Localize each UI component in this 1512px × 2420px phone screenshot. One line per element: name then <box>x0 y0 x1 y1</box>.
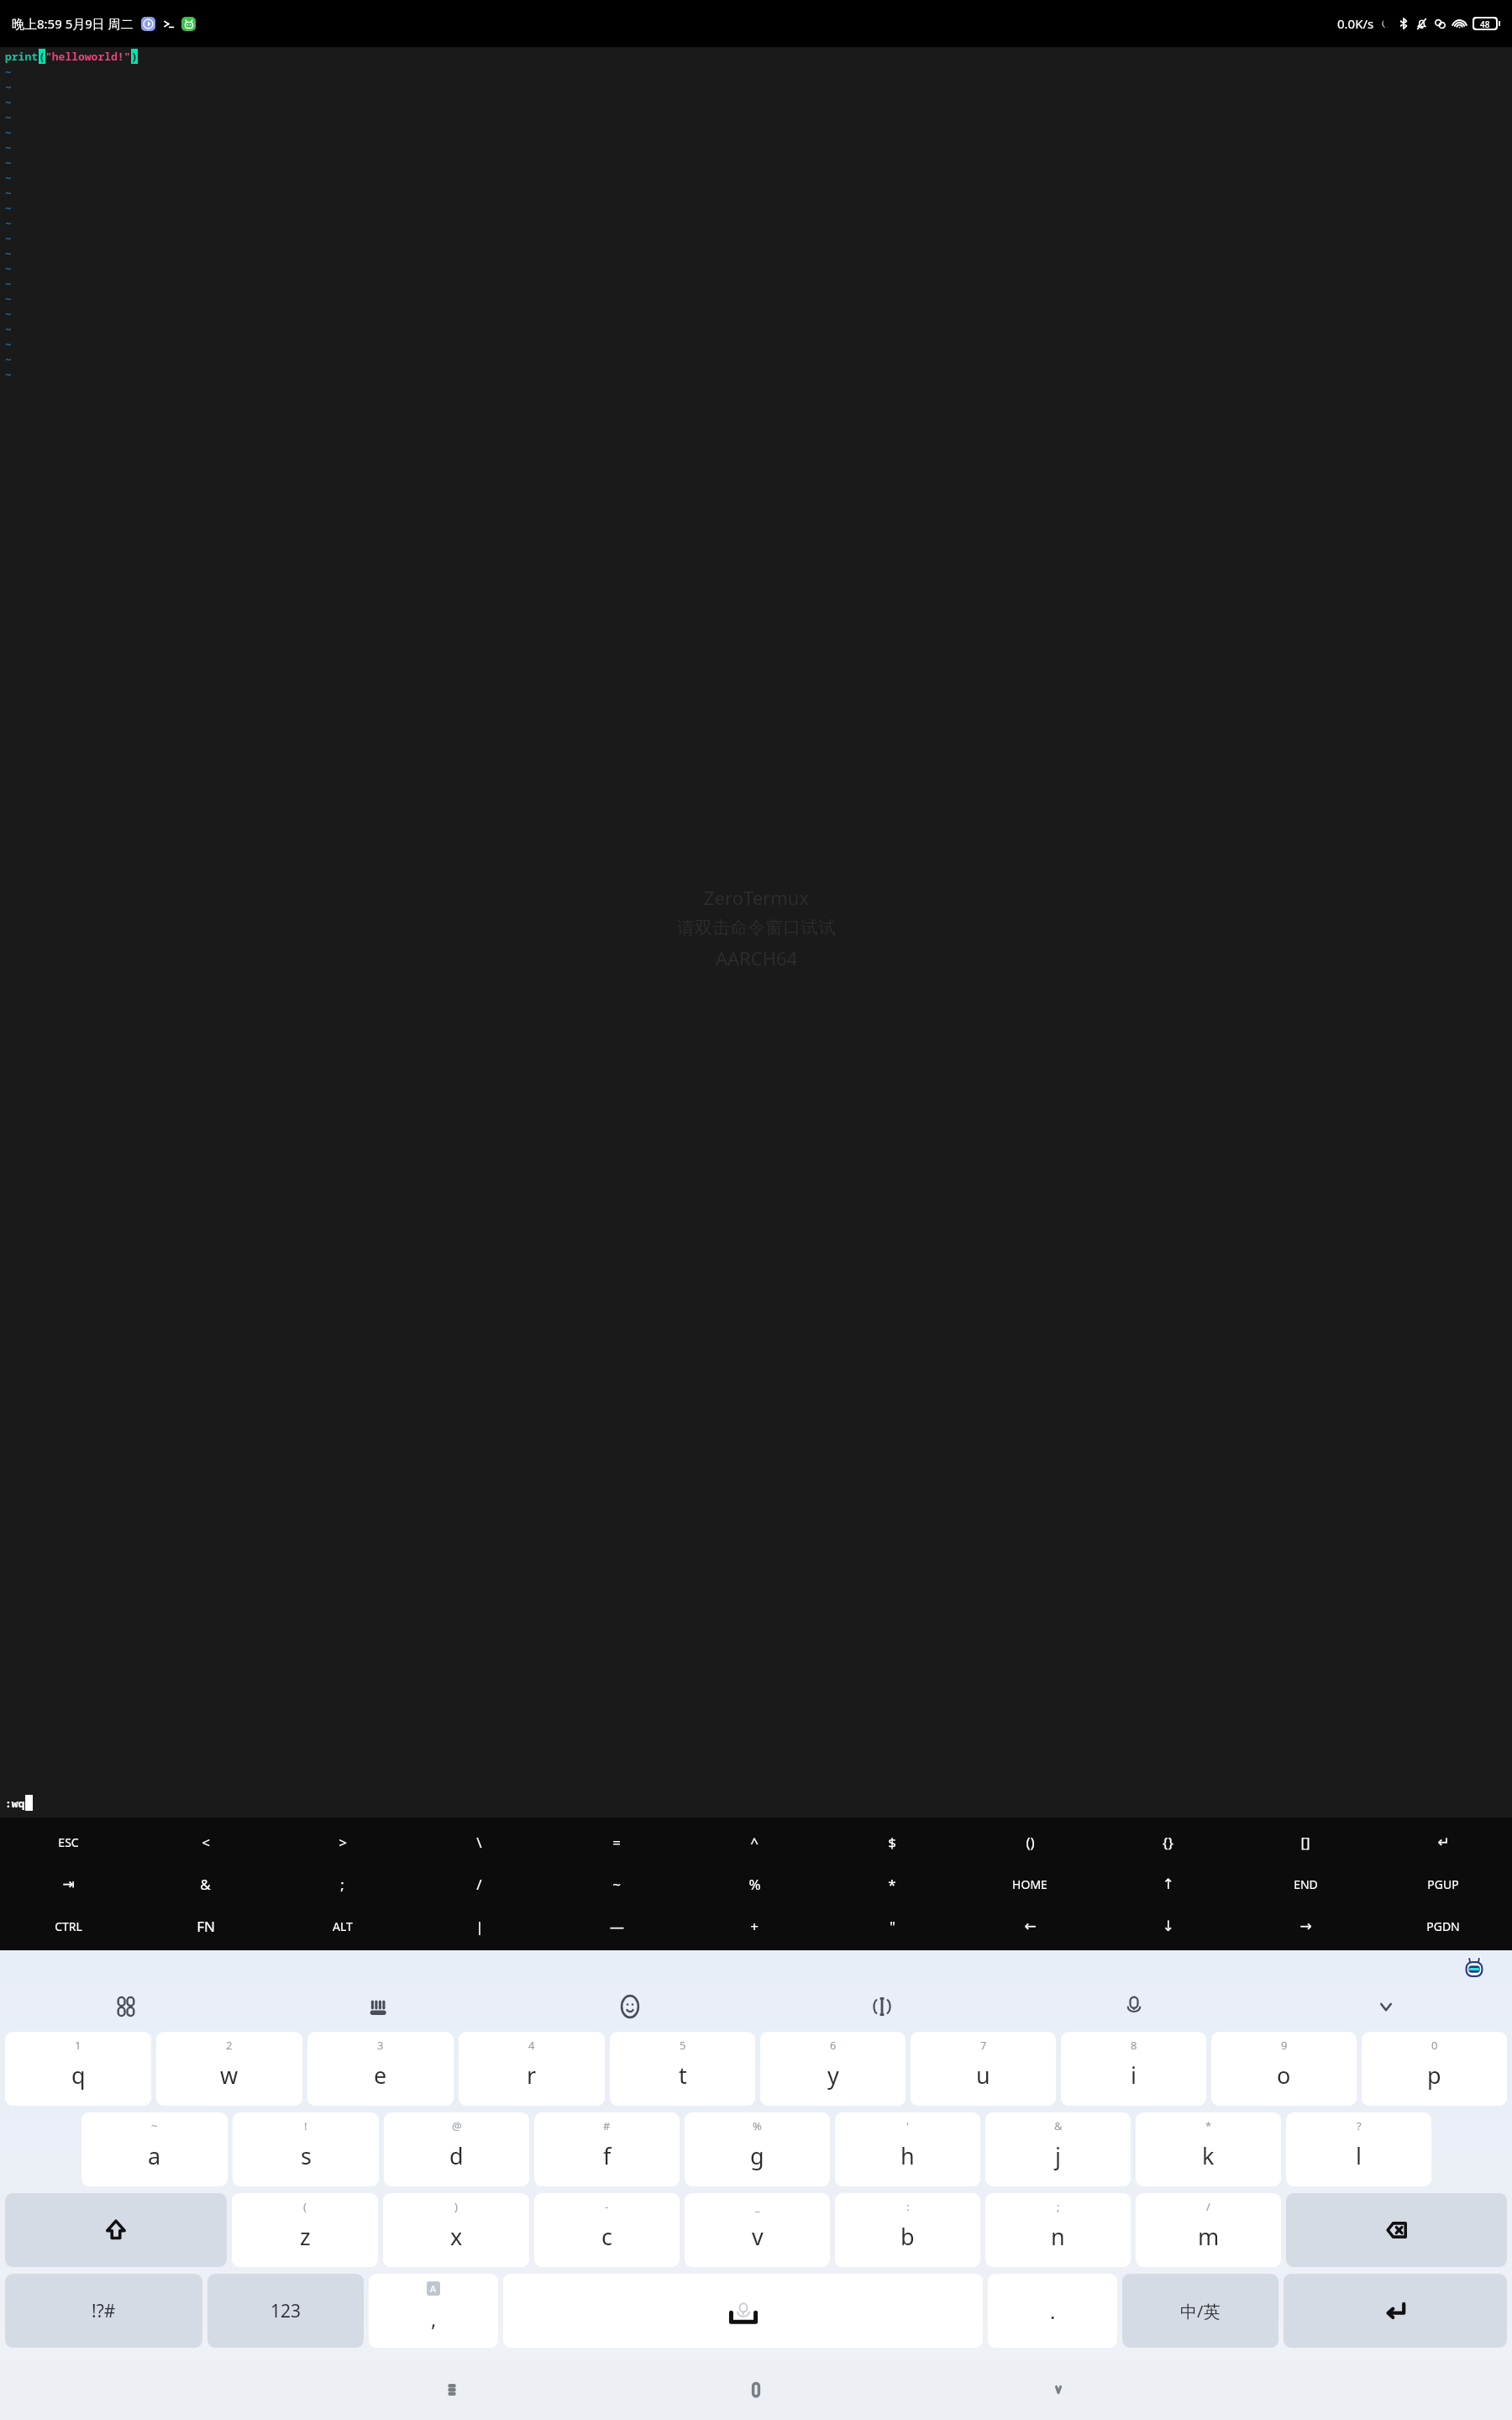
staticText: % <box>748 1875 761 1894</box>
button[interactable]: — <box>548 1905 685 1947</box>
button[interactable]: [] <box>1236 1821 1374 1863</box>
button[interactable]: A <box>369 2274 498 2348</box>
button[interactable]: ; <box>274 1863 411 1905</box>
button[interactable]: !?# <box>5 2274 202 2348</box>
button[interactable]: & <box>985 2112 1131 2186</box>
button[interactable]: ; <box>985 2193 1131 2267</box>
button[interactable]: & <box>137 1863 274 1905</box>
button[interactable]: | <box>411 1905 548 1947</box>
staticText: & <box>1054 2118 1063 2133</box>
button[interactable]: Voice input <box>1008 1986 1260 2027</box>
button[interactable]: / <box>1136 2193 1281 2267</box>
button[interactable]: \ <box>411 1821 548 1863</box>
button[interactable]: % <box>685 2112 830 2186</box>
staticText: 晚上8:59 5月9日 周二 <box>12 15 134 32</box>
button[interactable]: Apps <box>0 1986 252 2027</box>
button[interactable]: < <box>137 1821 274 1863</box>
button[interactable]: 2 <box>156 2032 302 2106</box>
staticText: m <box>1198 2221 1220 2252</box>
button[interactable]: CTRL <box>0 1905 137 1947</box>
button[interactable]: ~ <box>81 2112 228 2186</box>
button[interactable]: = <box>548 1821 685 1863</box>
button[interactable]: Backspace <box>1286 2193 1507 2267</box>
button[interactable]: ALT <box>274 1905 411 1947</box>
button[interactable]: 7 <box>911 2032 1056 2106</box>
button[interactable]: 8 <box>1061 2032 1206 2106</box>
staticText: o <box>1277 2060 1291 2091</box>
button[interactable]: Emoji <box>504 1986 756 2027</box>
button[interactable]: Enter <box>1284 2274 1507 2348</box>
staticText: ALT <box>333 1918 353 1934</box>
button[interactable]: ( <box>232 2193 378 2267</box>
button[interactable]: 3 <box>307 2032 454 2106</box>
button[interactable]: $ <box>823 1821 961 1863</box>
staticText: 9 <box>1281 2038 1288 2053</box>
button[interactable]: PGDN <box>1374 1905 1512 1947</box>
button[interactable]: ^ <box>685 1821 823 1863</box>
button[interactable]: PGUP <box>1374 1863 1512 1905</box>
button[interactable]: Shift <box>5 2193 227 2267</box>
staticText: 请双击命令窗口试试 <box>677 917 836 939</box>
button[interactable]: * <box>823 1863 961 1905</box>
button[interactable]: ESC <box>0 1821 137 1863</box>
staticText: > <box>339 1833 347 1852</box>
button[interactable]: Space <box>503 2274 983 2348</box>
button[interactable]: + <box>685 1905 823 1947</box>
button[interactable]: Recents <box>302 2359 605 2420</box>
button[interactable]: 123 <box>207 2274 364 2348</box>
button[interactable]: * <box>1136 2112 1281 2186</box>
staticText: ~ <box>151 2118 158 2133</box>
button[interactable]: ↵ <box>1374 1821 1512 1863</box>
button[interactable]: ? <box>1286 2112 1431 2186</box>
staticText: ~ <box>5 306 12 321</box>
button[interactable]: Hide keyboard <box>1260 1986 1512 2027</box>
button[interactable]: ) <box>383 2193 529 2267</box>
button[interactable]: 4 <box>459 2032 605 2106</box>
button[interactable]: FN <box>137 1905 274 1947</box>
button[interactable]: Assistant <box>1463 1958 1485 1980</box>
button[interactable]: ~ <box>548 1863 685 1905</box>
button[interactable]: Back <box>907 2359 1210 2420</box>
button[interactable]: 1 <box>5 2032 151 2106</box>
button[interactable]: " <box>823 1905 961 1947</box>
button[interactable]: ! <box>233 2112 379 2186</box>
button[interactable]: 9 <box>1211 2032 1357 2106</box>
button[interactable]: : <box>835 2193 980 2267</box>
staticText: = <box>612 1833 621 1852</box>
button[interactable]: ⇥ <box>0 1863 137 1905</box>
staticText: ~ <box>5 124 12 139</box>
button[interactable]: () <box>961 1821 1099 1863</box>
button[interactable]: _ <box>685 2193 830 2267</box>
button[interactable]: Keyboard layout <box>252 1986 504 2027</box>
button[interactable]: / <box>411 1863 548 1905</box>
staticText: 4 <box>528 2038 535 2053</box>
button[interactable]: > <box>274 1821 411 1863</box>
staticText: ~ <box>5 230 12 245</box>
button[interactable]: HOME <box>961 1863 1099 1905</box>
button[interactable]: @ <box>384 2112 529 2186</box>
button[interactable]: END <box>1236 1863 1374 1905</box>
button[interactable]: - <box>534 2193 680 2267</box>
button[interactable]: 中/英 <box>1122 2274 1278 2348</box>
button[interactable]: → <box>1236 1905 1374 1947</box>
staticText: "helloworld!" <box>45 49 131 64</box>
button[interactable]: ← <box>961 1905 1099 1947</box>
staticText: f <box>603 2140 612 2171</box>
button[interactable]: 6 <box>760 2032 906 2106</box>
staticText: ~ <box>5 139 12 155</box>
button[interactable]: Home <box>605 2359 907 2420</box>
button[interactable]: Text editing <box>756 1986 1008 2027</box>
button[interactable]: % <box>685 1863 823 1905</box>
button[interactable]: ↑ <box>1099 1863 1236 1905</box>
button[interactable]: 5 <box>610 2032 755 2106</box>
staticText: ~ <box>5 245 12 260</box>
button[interactable]: {} <box>1099 1821 1236 1863</box>
staticText: ~ <box>5 291 12 306</box>
staticText: * <box>1205 2118 1212 2133</box>
button[interactable]: 0 <box>1362 2032 1507 2106</box>
staticText: ~ <box>5 79 12 94</box>
button[interactable]: ↓ <box>1099 1905 1236 1947</box>
button[interactable]: # <box>534 2112 680 2186</box>
button[interactable]: . <box>988 2274 1117 2348</box>
button[interactable]: ' <box>835 2112 980 2186</box>
